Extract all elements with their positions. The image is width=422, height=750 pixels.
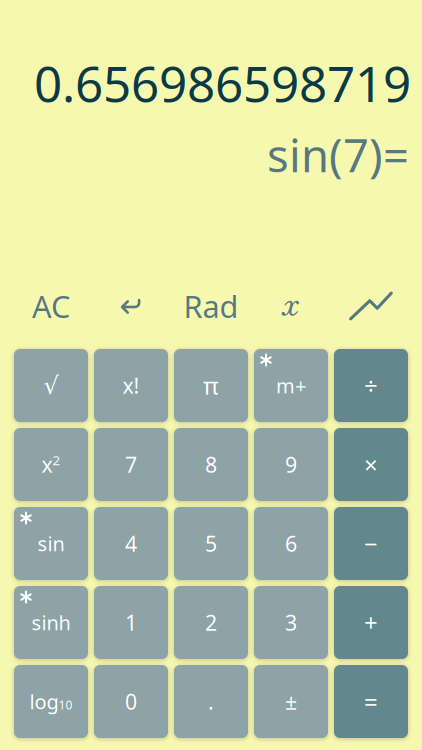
button[interactable]: 8 [174,428,248,501]
staticText: AC [32,286,70,326]
button[interactable]: 4 [94,507,168,580]
button[interactable]: sinh [14,586,88,659]
staticText: log [29,688,58,715]
button[interactable]: − [334,507,408,580]
button[interactable]: Rad [174,287,248,325]
button[interactable]: x [14,428,88,501]
button[interactable]: log [14,665,88,738]
staticText: 7 [125,450,137,479]
button[interactable]: Backspace [94,287,168,325]
button[interactable]: 2 [174,586,248,659]
button[interactable]: . [174,665,248,738]
button[interactable]: 6 [254,507,328,580]
button[interactable]: 9 [254,428,328,501]
staticText: + [364,607,378,638]
staticText: ÷ [364,370,378,401]
staticText: π [203,370,219,401]
staticText: 8 [205,450,217,479]
button[interactable]: 5 [174,507,248,580]
button[interactable]: 1 [94,586,168,659]
button[interactable]: ÷ [334,349,408,422]
button[interactable]: + [334,586,408,659]
staticText: ± [285,687,297,716]
staticText: 1 [125,608,137,637]
staticText: √ [43,372,58,399]
staticText: 2 [52,451,60,469]
button[interactable]: sin [14,507,88,580]
staticText: m+ [276,372,306,399]
staticText: 9 [285,450,297,479]
staticText: 0.656986598719 [34,50,411,115]
staticText: sin(7)= [267,124,409,185]
staticText: 2 [205,608,217,637]
button[interactable]: = [334,665,408,738]
staticText: Rad [183,286,238,326]
staticText: sin [37,530,64,557]
staticText: x! [122,371,139,400]
button[interactable]: AC [14,287,88,325]
staticText: sinh [31,609,70,636]
button[interactable]: ± [254,665,328,738]
staticText: × [364,449,378,480]
button[interactable]: x! [94,349,168,422]
staticText: 6 [285,529,297,558]
staticText: . [208,687,214,716]
button[interactable]: 0 [94,665,168,738]
staticText: 10 [58,697,72,713]
staticText: x [283,289,299,323]
button[interactable]: 7 [94,428,168,501]
staticText: = [364,686,378,717]
button[interactable]: × [334,428,408,501]
staticText: x [41,450,52,479]
staticText: 3 [285,608,297,637]
button[interactable]: √ [14,349,88,422]
staticText: 4 [125,529,137,558]
button[interactable]: x [254,287,328,325]
staticText: 5 [205,529,217,558]
staticText: − [364,528,378,559]
button[interactable]: 3 [254,586,328,659]
button[interactable]: Graph [334,287,408,325]
button[interactable]: π [174,349,248,422]
staticText: 0 [125,687,137,716]
button[interactable]: m+ [254,349,328,422]
